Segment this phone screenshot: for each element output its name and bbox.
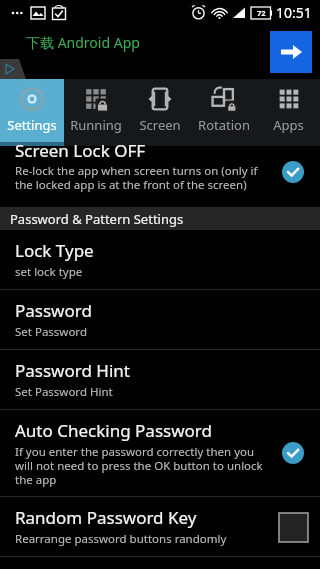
staticText: Screen Lock OFF	[15, 139, 146, 162]
button[interactable]: Download	[270, 31, 312, 73]
staticText: Screen	[139, 116, 181, 134]
staticText: Password & Pattern Settings	[10, 210, 184, 228]
button[interactable]: Screen	[128, 79, 192, 146]
button[interactable]: Password	[0, 290, 320, 349]
staticText: Rearrange password buttons randomly	[15, 531, 227, 547]
staticText: Password	[15, 299, 92, 322]
staticText: Password Hint	[15, 359, 130, 382]
button[interactable]: 下载 Android App	[0, 25, 320, 79]
button[interactable]: Screen Lock OFF	[0, 146, 320, 207]
button[interactable]: Running	[64, 79, 128, 146]
button[interactable]: Rotation	[192, 79, 256, 146]
button[interactable]: Apps	[256, 79, 320, 146]
button[interactable]: Random Password Key	[0, 497, 320, 556]
button[interactable]: Settings	[0, 79, 64, 146]
staticText: Set Password Hint	[15, 384, 113, 400]
staticText: Rotation	[198, 116, 250, 134]
staticText: Apps	[273, 116, 304, 134]
button[interactable]: Auto Checking Password	[0, 410, 320, 496]
staticText: Random Password Key	[15, 506, 197, 529]
button[interactable]: Password Hint	[0, 350, 320, 409]
staticText: set lock type	[15, 264, 83, 280]
staticText: 下载 Android App	[26, 33, 140, 52]
staticText: Lock Type	[15, 239, 94, 262]
staticText: If you enter the password correctly then…	[15, 444, 263, 487]
staticText: Re-lock the app when screen turns on (on…	[15, 163, 258, 192]
staticText: Running	[70, 116, 122, 134]
staticText: 72	[257, 8, 266, 18]
staticText: 10:51	[276, 3, 312, 22]
button[interactable]: Lock Type	[0, 230, 320, 289]
staticText: Auto Checking Password	[15, 419, 212, 442]
staticText: Set Password	[15, 324, 87, 340]
staticText: Settings	[7, 116, 57, 134]
